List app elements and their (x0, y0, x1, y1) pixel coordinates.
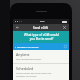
staticText: Give unrestricted access. (16, 58, 42, 61)
button[interactable]: Back (15, 25, 20, 30)
button[interactable]: Close (62, 25, 67, 30)
button[interactable]: Scheduled (13, 64, 69, 80)
staticText: Send eGift (33, 26, 49, 30)
staticText: What type of eGift would you like to sen… (24, 33, 59, 41)
staticText: Anytime (16, 52, 30, 57)
staticText: 9:41 (40, 20, 45, 23)
staticText: Control which days and times your recipi… (16, 72, 52, 78)
staticText: Scheduled (16, 66, 34, 71)
button[interactable]: Anytime (13, 50, 69, 63)
staticText: 1 Recipient via Email (15, 45, 39, 48)
button[interactable]: 1 Recipient via Email (13, 43, 69, 50)
